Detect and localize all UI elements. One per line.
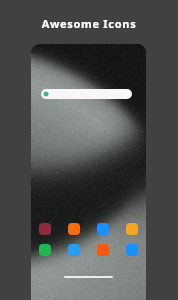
button[interactable]: App [97,244,109,256]
button[interactable]: App [97,223,109,235]
button[interactable]: App [126,223,138,235]
button[interactable]: Search [41,89,132,99]
button[interactable]: App [39,244,51,256]
staticText: Awesome Icons [0,16,178,31]
button[interactable]: App [126,244,138,256]
button[interactable]: App [39,223,51,235]
button[interactable]: App [68,223,80,235]
button[interactable]: App [68,244,80,256]
